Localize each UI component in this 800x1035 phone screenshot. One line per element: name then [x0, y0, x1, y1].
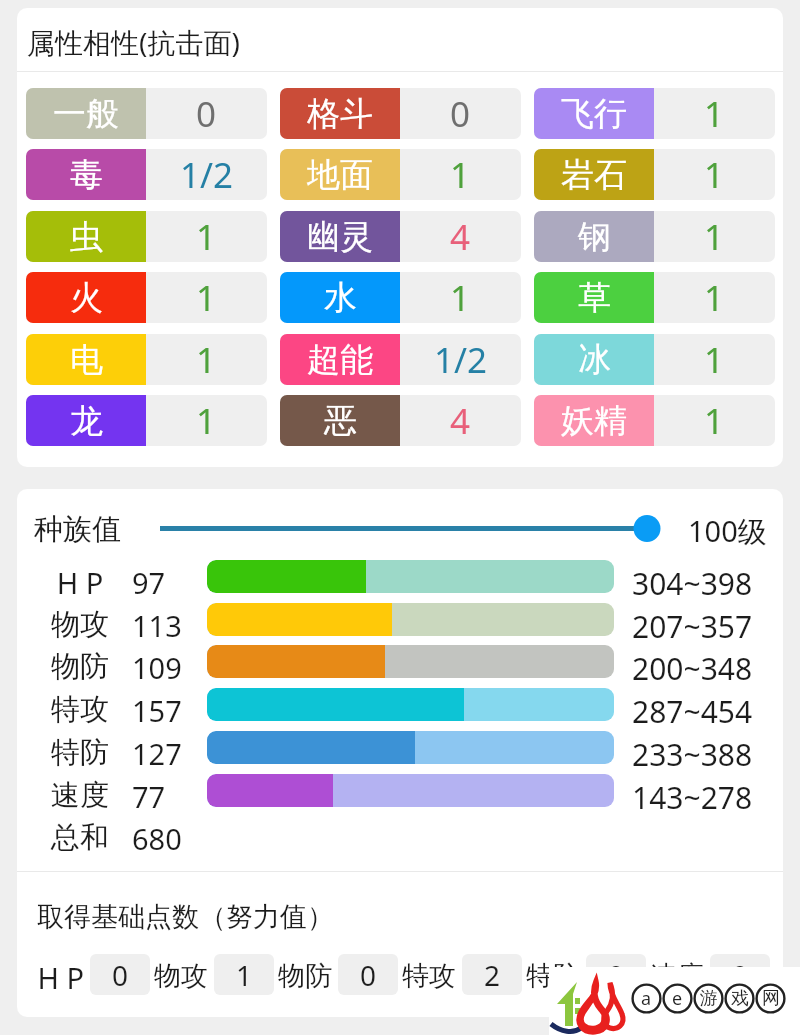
- staticText: 恶: [324, 400, 357, 442]
- button[interactable]: 0: [710, 954, 770, 995]
- staticText: 4: [450, 397, 471, 445]
- staticText: 种族值: [34, 511, 121, 548]
- staticText: 77: [132, 777, 166, 816]
- staticText: 地面: [307, 154, 373, 196]
- staticText: 特攻: [393, 959, 456, 993]
- staticText: 1: [450, 274, 471, 322]
- staticText: 143~278: [632, 777, 753, 818]
- staticText: 1: [704, 274, 725, 322]
- staticText: 1: [704, 213, 725, 261]
- staticText: 0: [112, 956, 129, 994]
- staticText: 127: [132, 734, 182, 773]
- button[interactable]: 1: [214, 954, 274, 995]
- staticText: 特防: [51, 734, 109, 771]
- button[interactable]: 地面: [280, 149, 521, 200]
- staticText: 电: [70, 339, 103, 381]
- button[interactable]: 虫: [26, 211, 267, 262]
- staticText: 一般: [53, 93, 119, 135]
- staticText: 157: [132, 691, 182, 730]
- staticText: 物攻: [145, 959, 208, 993]
- button[interactable]: 妖精: [534, 395, 775, 446]
- staticText: 1: [704, 397, 725, 445]
- staticText: 233~388: [632, 734, 753, 775]
- staticText: 冰: [578, 339, 611, 381]
- button[interactable]: 草: [534, 272, 775, 323]
- staticText: 属性相性(抗击面): [27, 23, 240, 61]
- button[interactable]: 钢: [534, 211, 775, 262]
- button[interactable]: 恶: [280, 395, 521, 446]
- staticText: 1: [196, 336, 217, 384]
- staticText: 物攻: [51, 606, 109, 643]
- staticText: 超能: [307, 339, 373, 381]
- staticText: 4: [450, 213, 471, 261]
- button[interactable]: 毒: [26, 149, 267, 200]
- staticText: 岩石: [561, 154, 627, 196]
- staticText: 207~357: [632, 606, 753, 647]
- button[interactable]: 0: [338, 954, 398, 995]
- staticText: 1: [196, 274, 217, 322]
- button[interactable]: 冰: [534, 334, 775, 385]
- staticText: 取得基础点数（努力值）: [37, 900, 334, 934]
- staticText: a: [641, 986, 652, 1011]
- staticText: 飞行: [561, 93, 627, 135]
- staticText: 287~454: [632, 691, 753, 732]
- staticText: 97: [132, 563, 166, 602]
- staticText: 草: [578, 277, 611, 319]
- staticText: 戏: [731, 987, 749, 1010]
- button[interactable]: 超能: [280, 334, 521, 385]
- staticText: 0: [608, 956, 625, 994]
- staticText: 速度: [51, 777, 109, 814]
- staticText: 特攻: [51, 691, 109, 728]
- staticText: 109: [132, 648, 182, 687]
- staticText: 火: [70, 277, 103, 319]
- staticText: 0: [450, 90, 471, 138]
- staticText: 304~398: [632, 563, 753, 604]
- staticText: 钢: [578, 216, 611, 258]
- staticText: 虫: [70, 216, 103, 258]
- staticText: 0: [360, 956, 377, 994]
- staticText: 毒: [70, 154, 103, 196]
- staticText: 1: [236, 956, 253, 994]
- staticText: 游: [700, 987, 718, 1010]
- button[interactable]: 飞行: [534, 88, 775, 139]
- staticText: 网: [762, 987, 780, 1010]
- staticText: 龙: [70, 400, 103, 442]
- staticText: 200~348: [632, 648, 753, 689]
- staticText: 680: [132, 819, 182, 858]
- staticText: 格斗: [307, 93, 373, 135]
- button[interactable]: 2: [462, 954, 522, 995]
- staticText: 1/2: [434, 336, 488, 384]
- button[interactable]: 格斗: [280, 88, 521, 139]
- button[interactable]: Level slider: [150, 512, 680, 544]
- staticText: 1: [704, 151, 725, 199]
- staticText: 物防: [51, 648, 109, 685]
- staticText: 0: [732, 956, 749, 994]
- staticText: 速度: [641, 959, 704, 993]
- button[interactable]: 一般: [26, 88, 267, 139]
- button[interactable]: 电: [26, 334, 267, 385]
- staticText: 1: [704, 90, 725, 138]
- staticText: 1/2: [180, 151, 234, 199]
- staticText: 1: [450, 151, 471, 199]
- staticText: 113: [132, 606, 182, 645]
- staticText: 总和: [51, 819, 109, 856]
- staticText: H P: [21, 958, 84, 997]
- staticText: 1: [704, 336, 725, 384]
- staticText: 0: [196, 90, 217, 138]
- staticText: H P: [51, 563, 109, 602]
- staticText: 幽灵: [307, 216, 373, 258]
- staticText: 妖精: [561, 400, 627, 442]
- button[interactable]: 火: [26, 272, 267, 323]
- button[interactable]: 岩石: [534, 149, 775, 200]
- staticText: 特防: [517, 959, 580, 993]
- button[interactable]: 0: [586, 954, 646, 995]
- staticText: e: [672, 986, 683, 1011]
- staticText: 1: [196, 213, 217, 261]
- staticText: 物防: [269, 959, 332, 993]
- staticText: 1: [196, 397, 217, 445]
- staticText: 2: [484, 956, 501, 994]
- button[interactable]: 0: [90, 954, 150, 995]
- button[interactable]: 幽灵: [280, 211, 521, 262]
- button[interactable]: 水: [280, 272, 521, 323]
- button[interactable]: 龙: [26, 395, 267, 446]
